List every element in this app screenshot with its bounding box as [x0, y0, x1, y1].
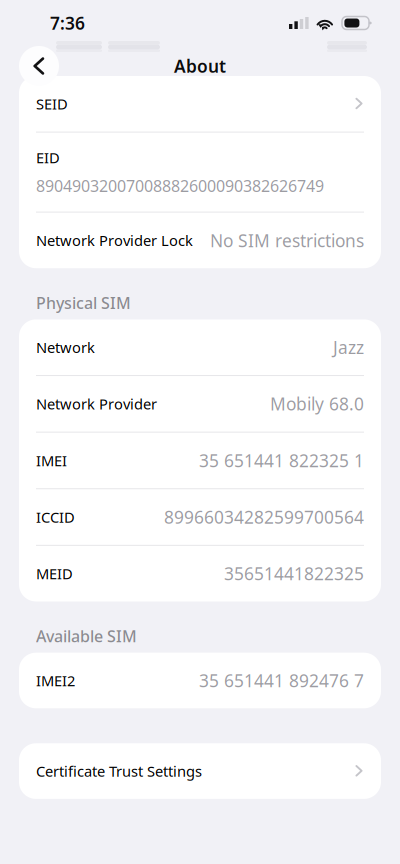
staticText: Certificate Trust Settings — [36, 761, 202, 781]
button[interactable]: Network Provider Lock — [19, 213, 381, 268]
staticText: Network Provider — [36, 394, 157, 414]
staticText: Jazz — [333, 336, 364, 359]
button[interactable]: MEID — [19, 546, 381, 601]
button[interactable]: Certificate Trust Settings — [19, 743, 381, 799]
button[interactable]: Network — [19, 319, 381, 375]
staticText: No SIM restrictions — [210, 229, 364, 252]
button[interactable]: IMEI2 — [19, 653, 381, 708]
staticText: SEID — [36, 94, 68, 114]
staticText: Mobily 68.0 — [270, 392, 364, 415]
button[interactable]: Network Provider — [19, 376, 381, 432]
staticText: Available SIM — [36, 625, 137, 647]
staticText: IMEI — [36, 451, 67, 470]
button[interactable]: Back — [19, 46, 59, 86]
staticText: 89966034282599700564 — [164, 505, 364, 528]
staticText: About — [174, 54, 226, 77]
staticText: 89049032007008882600090382626749 — [36, 175, 324, 196]
staticText: MEID — [36, 564, 73, 583]
staticText: EID — [36, 148, 60, 167]
staticText: 35651441822325 — [224, 562, 364, 585]
button[interactable]: IMEI — [19, 433, 381, 488]
staticText: 7:36 — [50, 11, 85, 34]
staticText: 35 651441 822325 1 — [199, 449, 364, 472]
staticText: Network — [36, 337, 95, 357]
button[interactable]: SEID — [19, 76, 381, 132]
staticText: 35 651441 892476 7 — [199, 669, 364, 692]
staticText: Network Provider Lock — [36, 231, 193, 250]
button[interactable]: ICCID — [19, 489, 381, 545]
staticText: Physical SIM — [36, 292, 131, 313]
staticText: IMEI2 — [36, 671, 75, 690]
button[interactable]: EID — [19, 133, 381, 212]
staticText: ICCID — [36, 507, 75, 527]
